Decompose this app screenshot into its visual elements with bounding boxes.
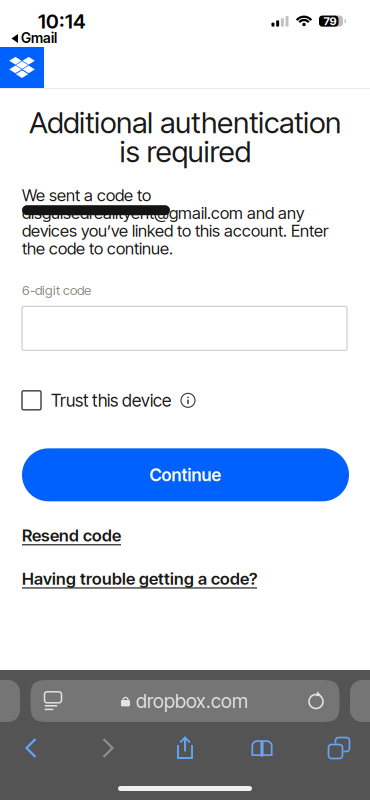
button[interactable]: Forward — [85, 732, 131, 764]
staticText: 79 — [323, 14, 336, 28]
staticText: Resend code — [22, 525, 121, 545]
button[interactable]: Bookmarks — [239, 732, 285, 764]
button[interactable]: Continue — [22, 448, 349, 501]
staticText: Continue — [149, 464, 221, 485]
button[interactable]: Having trouble getting a code? — [22, 568, 257, 589]
staticText: 10:14 — [38, 9, 86, 33]
button[interactable]: Gmail — [11, 29, 57, 46]
button[interactable]: Trust this device — [22, 390, 195, 410]
button[interactable]: Dropbox home — [0, 47, 44, 88]
button[interactable]: Back — [8, 732, 54, 764]
staticText: dropbox.com — [136, 689, 248, 713]
staticText: Additional authentication is required — [29, 108, 341, 166]
staticText: Trust this device — [51, 390, 171, 411]
button[interactable]: Share — [162, 732, 208, 764]
button[interactable]: Tabs — [316, 732, 362, 764]
staticText: Gmail — [21, 29, 57, 46]
staticText: Having trouble getting a code? — [22, 568, 257, 589]
button[interactable]: dropbox.com — [30, 680, 339, 722]
staticText: 6-digit code — [22, 282, 91, 298]
staticText: We sent a code to disguisedrealityent@gm… — [22, 186, 328, 257]
button[interactable]: Resend code — [22, 525, 121, 545]
